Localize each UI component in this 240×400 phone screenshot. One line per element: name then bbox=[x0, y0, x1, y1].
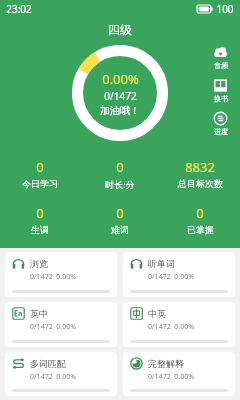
staticText: 0 bbox=[36, 204, 44, 222]
staticText: 0/1472 0.00% bbox=[30, 372, 76, 382]
staticText: 换书 bbox=[214, 94, 228, 103]
button[interactable]: Audio bbox=[209, 44, 232, 71]
staticText: 音频 bbox=[214, 61, 228, 70]
staticText: 时长:分 bbox=[105, 178, 135, 190]
staticText: 0 bbox=[116, 204, 124, 222]
button[interactable]: 英中 bbox=[5, 302, 117, 347]
staticText: 0 bbox=[196, 204, 204, 222]
staticText: 英中 bbox=[30, 308, 48, 319]
button[interactable]: Progress bbox=[209, 110, 232, 137]
staticText: 已掌握 bbox=[187, 224, 214, 235]
staticText: 完整解释 bbox=[148, 358, 184, 369]
staticText: 0/1472 0.00% bbox=[148, 272, 194, 282]
staticText: 23:02 bbox=[6, 2, 32, 16]
staticText: 进度 bbox=[214, 127, 228, 136]
staticText: 0 bbox=[36, 158, 44, 176]
staticText: 总目标次数 bbox=[178, 178, 223, 189]
staticText: 0/1472 0.00% bbox=[148, 372, 194, 382]
staticText: 浏览 bbox=[30, 258, 48, 269]
staticText: 四级 bbox=[108, 22, 132, 37]
staticText: 中英 bbox=[148, 308, 166, 319]
button[interactable]: 听单词 bbox=[123, 252, 235, 297]
staticText: 0/1472 0.00% bbox=[148, 322, 194, 332]
button[interactable]: Change book bbox=[209, 77, 232, 104]
staticText: 0/1472 0.00% bbox=[30, 322, 76, 332]
button[interactable]: 多词匹配 bbox=[5, 352, 117, 396]
button[interactable]: 完整解释 bbox=[123, 352, 235, 396]
staticText: 今日学习 bbox=[22, 178, 58, 189]
staticText: 难词 bbox=[111, 224, 129, 235]
staticText: 8832 bbox=[185, 158, 215, 176]
staticText: 0/1472 0.00% bbox=[30, 272, 76, 282]
staticText: 100 bbox=[216, 2, 234, 16]
button[interactable]: 中英 bbox=[123, 302, 235, 347]
staticText: 多词匹配 bbox=[30, 358, 66, 369]
staticText: 听单词 bbox=[148, 258, 175, 269]
button[interactable]: 浏览 bbox=[5, 252, 117, 297]
staticText: 0.00% bbox=[102, 70, 139, 88]
staticText: 0/1472 bbox=[104, 89, 137, 103]
staticText: 生调 bbox=[31, 224, 49, 235]
staticText: 0 bbox=[116, 158, 124, 176]
staticText: 加油哦！ bbox=[100, 104, 140, 117]
